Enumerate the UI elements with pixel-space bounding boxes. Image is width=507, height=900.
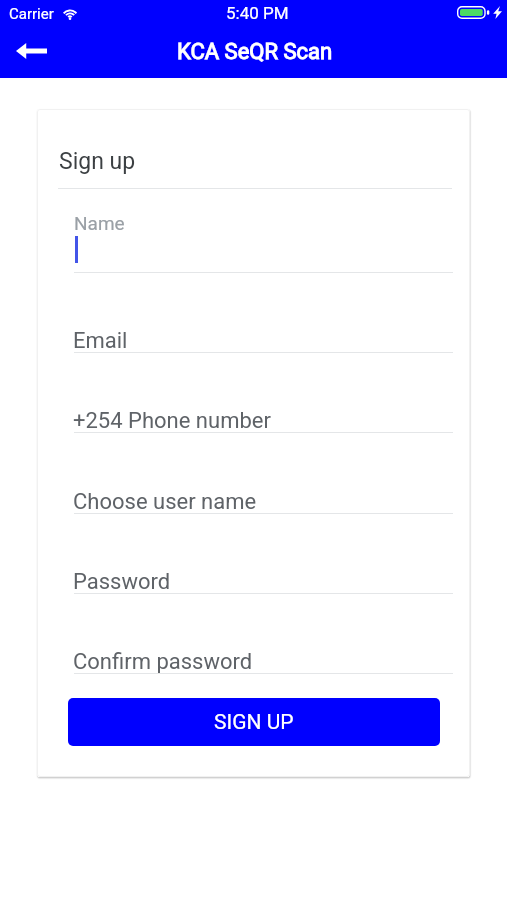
staticText: Choose user name [73,489,257,515]
button[interactable]: Password [74,563,453,594]
button[interactable]: Choose user name [74,483,453,514]
staticText: 5:40 PM [226,3,289,23]
staticText: Email [73,328,128,354]
button[interactable]: Email [74,322,453,353]
staticText: Sign up [59,148,136,175]
button[interactable]: Confirm password [74,643,453,674]
staticText: Confirm password [73,649,253,675]
button[interactable]: SIGN UP [68,698,440,746]
staticText: Name [74,212,125,234]
staticText: +254 Phone number [73,408,271,434]
button[interactable]: Back [6,26,56,76]
staticText: Carrier [9,5,54,23]
staticText: SIGN UP [214,710,294,735]
staticText: Password [73,569,171,595]
button[interactable]: +254 Phone number [74,402,453,433]
staticText: KCA SeQR Scan [177,39,333,65]
button[interactable]: Name [74,207,453,273]
